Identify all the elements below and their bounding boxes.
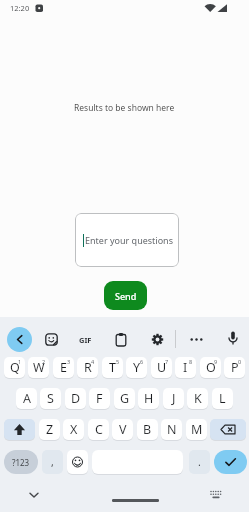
staticText: M: [191, 421, 203, 438]
staticText: I: [183, 359, 188, 376]
staticText: E: [60, 359, 67, 376]
staticText: 4: [91, 358, 95, 365]
button[interactable]: Q: [4, 357, 25, 378]
button[interactable]: [7, 327, 32, 352]
staticText: F: [96, 390, 103, 407]
staticText: ,: [51, 455, 54, 469]
button[interactable]: C: [88, 419, 109, 440]
button[interactable]: F: [89, 388, 110, 409]
staticText: N: [167, 421, 177, 438]
staticText: C: [95, 421, 103, 438]
staticText: Z: [46, 421, 54, 438]
button[interactable]: I: [175, 357, 196, 378]
staticText: 6: [140, 358, 144, 365]
button[interactable]: B: [137, 419, 158, 440]
button[interactable]: D: [65, 388, 86, 409]
button[interactable]: .: [189, 450, 210, 474]
staticText: V: [119, 421, 127, 438]
staticText: K: [194, 390, 202, 407]
button[interactable]: [209, 487, 223, 501]
button[interactable]: [114, 332, 128, 347]
button[interactable]: A: [16, 388, 37, 409]
button[interactable]: [44, 332, 59, 347]
button[interactable]: R: [77, 357, 98, 378]
staticText: S: [47, 390, 54, 407]
staticText: 12:20: [10, 3, 30, 13]
button[interactable]: [150, 332, 165, 347]
staticText: Enter your questions: [85, 234, 173, 246]
staticText: 8: [189, 358, 193, 365]
button[interactable]: K: [187, 388, 208, 409]
staticText: J: [172, 390, 176, 407]
button[interactable]: Y: [126, 357, 147, 378]
button[interactable]: O: [200, 357, 221, 378]
staticText: T: [109, 359, 116, 376]
button[interactable]: Enter your questions: [75, 213, 179, 267]
staticText: Results to be shown here: [74, 102, 175, 114]
staticText: 3: [67, 358, 71, 365]
button[interactable]: ,: [42, 450, 63, 474]
button[interactable]: X: [63, 419, 84, 440]
staticText: Q: [10, 359, 20, 376]
button[interactable]: Send: [104, 281, 147, 310]
button[interactable]: G: [114, 388, 135, 409]
button[interactable]: ?123: [4, 450, 38, 474]
staticText: GIF: [79, 335, 92, 345]
staticText: U: [157, 359, 167, 376]
button[interactable]: L: [212, 388, 233, 409]
staticText: 5: [116, 358, 120, 365]
staticText: A: [23, 390, 31, 407]
button[interactable]: [4, 419, 35, 440]
staticText: 0: [238, 358, 242, 365]
button[interactable]: [188, 332, 205, 347]
staticText: P: [231, 359, 239, 376]
staticText: D: [71, 390, 81, 407]
button[interactable]: T: [102, 357, 123, 378]
button[interactable]: N: [161, 419, 182, 440]
staticText: ?123: [12, 457, 30, 468]
button[interactable]: H: [138, 388, 159, 409]
button[interactable]: [210, 419, 246, 440]
button[interactable]: J: [163, 388, 184, 409]
button[interactable]: M: [186, 419, 207, 440]
staticText: X: [70, 421, 78, 438]
button[interactable]: GIF: [74, 332, 96, 347]
staticText: Y: [133, 359, 141, 376]
button[interactable]: Z: [39, 419, 60, 440]
button[interactable]: [226, 330, 240, 348]
staticText: W: [33, 359, 45, 376]
button[interactable]: S: [40, 388, 61, 409]
staticText: .: [198, 455, 201, 469]
staticText: 2: [42, 358, 46, 365]
button[interactable]: E: [53, 357, 74, 378]
staticText: H: [144, 390, 154, 407]
staticText: G: [120, 390, 130, 407]
button[interactable]: [214, 450, 247, 474]
button[interactable]: W: [28, 357, 49, 378]
button[interactable]: P: [224, 357, 245, 378]
staticText: R: [84, 359, 92, 376]
button[interactable]: [28, 489, 40, 501]
button[interactable]: [67, 450, 88, 474]
staticText: 1: [18, 358, 22, 365]
staticText: L: [219, 390, 226, 407]
staticText: B: [143, 421, 152, 438]
staticText: 9: [214, 358, 218, 365]
button[interactable]: V: [112, 419, 133, 440]
staticText: 7: [165, 358, 169, 365]
staticText: O: [206, 359, 216, 376]
button[interactable]: U: [151, 357, 172, 378]
staticText: Send: [115, 290, 137, 302]
